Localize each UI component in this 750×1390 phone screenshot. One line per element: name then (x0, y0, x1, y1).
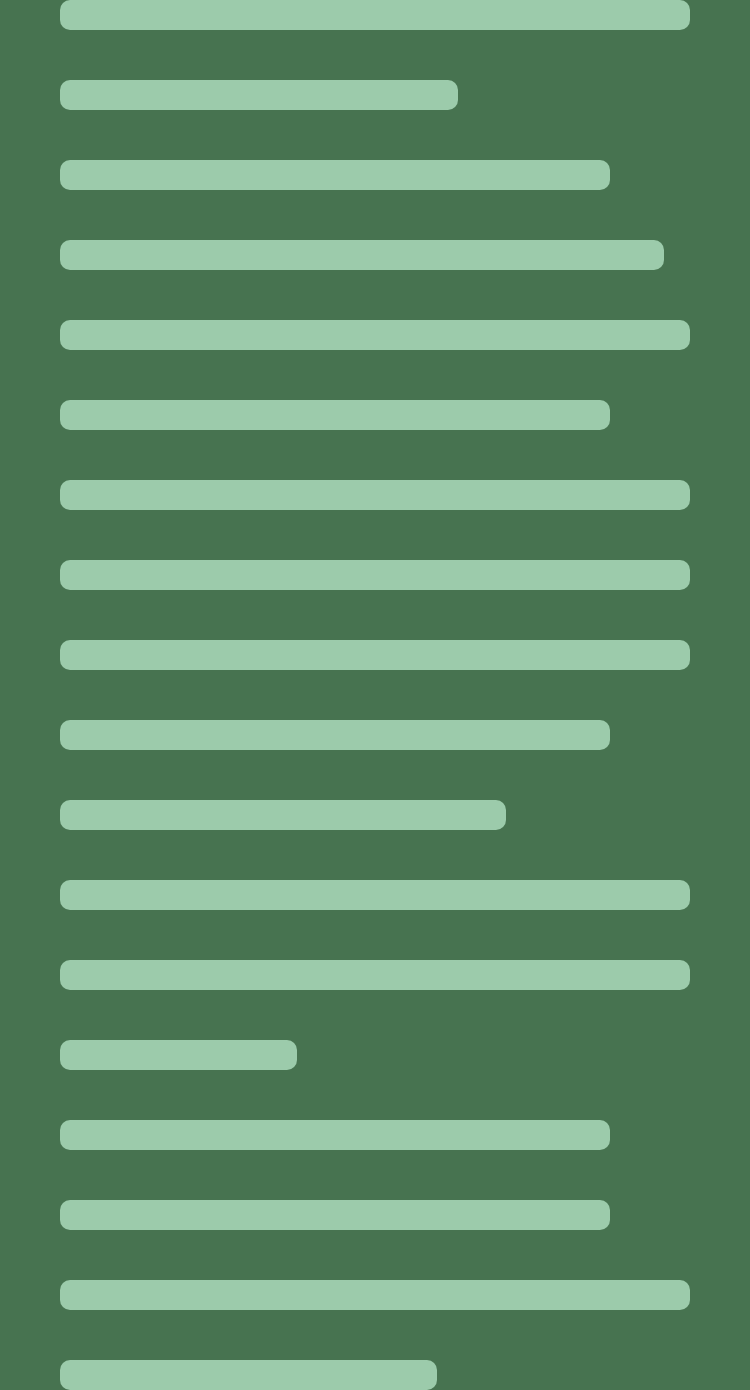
button[interactable]: Loading text line 6 (0, 400, 750, 480)
button[interactable]: Loading text line 10 (0, 720, 750, 800)
button[interactable]: Loading text line 8 (0, 560, 750, 640)
button[interactable]: Loading text line 2 (0, 80, 750, 160)
button[interactable]: Loading text line 9 (0, 640, 750, 720)
button[interactable]: Loading text line 16 (0, 1200, 750, 1280)
button[interactable]: Loading text line 18 (0, 1360, 750, 1390)
button[interactable]: Loading text line 11 (0, 800, 750, 880)
button[interactable]: Loading text line 3 (0, 160, 750, 240)
button[interactable]: Loading text line 12 (0, 880, 750, 960)
button[interactable]: Loading text line 15 (0, 1120, 750, 1200)
button[interactable]: Loading text line 14 (0, 1040, 750, 1120)
button[interactable]: Loading text line 4 (0, 240, 750, 320)
button[interactable]: Loading text line 13 (0, 960, 750, 1040)
button[interactable]: Loading text line 5 (0, 320, 750, 400)
button[interactable]: Loading text line 1 (0, 0, 750, 80)
button[interactable]: Loading text line 7 (0, 480, 750, 560)
button[interactable]: Loading text line 17 (0, 1280, 750, 1360)
